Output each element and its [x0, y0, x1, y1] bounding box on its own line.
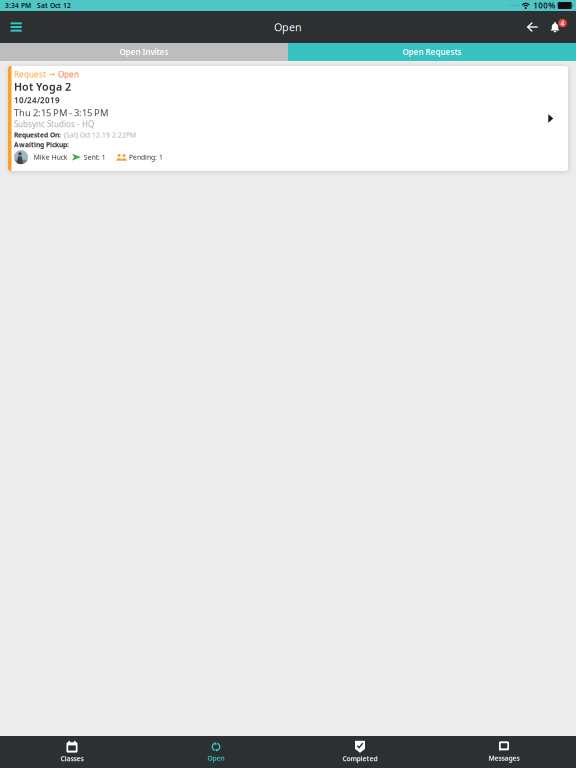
staticText: →	[48, 70, 55, 79]
staticText: Completed	[342, 754, 377, 763]
staticText: Sent: 1	[84, 153, 106, 162]
staticText: (Sat) Oct 12.19 2:22PM	[64, 130, 136, 139]
staticText: Open Requests	[402, 47, 461, 57]
staticText: Open Invites	[119, 47, 168, 57]
staticText: Sat Oct 12	[37, 1, 71, 10]
button[interactable]: Completed	[288, 736, 432, 768]
staticText: 3:34 PM	[5, 1, 31, 10]
button[interactable]: Back	[518, 11, 547, 43]
button[interactable]: Messages	[432, 736, 576, 768]
button[interactable]: Open Requests	[288, 43, 576, 61]
staticText: Hot Yoga 2	[14, 80, 71, 94]
staticText: Requested On:	[14, 130, 61, 139]
staticText: Request	[14, 69, 46, 80]
staticText: 10/24/2019	[14, 95, 60, 105]
staticText: 100%	[533, 0, 555, 11]
staticText: Pending: 1	[129, 153, 163, 162]
button[interactable]: Request	[8, 66, 568, 171]
staticText: 4	[561, 19, 565, 28]
staticText: Open	[207, 754, 224, 763]
button[interactable]: Open Invites	[0, 43, 288, 61]
staticText: Subsync Studios - HQ	[14, 119, 94, 129]
button[interactable]: Notifications	[547, 11, 570, 43]
staticText: Open	[274, 20, 302, 34]
button[interactable]: Open	[144, 736, 288, 768]
staticText: Thu 2:15 PM - 3:15 PM	[14, 106, 108, 119]
staticText: Open	[58, 69, 79, 80]
button[interactable]: Classes	[0, 736, 144, 768]
staticText: Awaiting Pickup:	[14, 140, 69, 149]
staticText: Classes	[60, 754, 83, 763]
button[interactable]: Menu	[0, 11, 32, 43]
staticText: Messages	[488, 754, 519, 763]
staticText: Mike Huck	[34, 153, 68, 162]
